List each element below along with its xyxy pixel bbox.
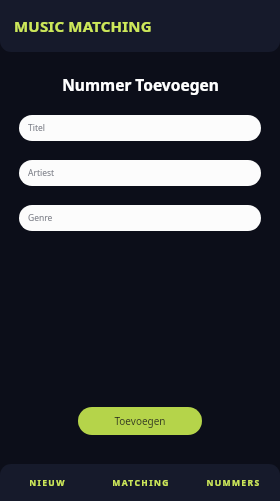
button[interactable]: NIEUW [0, 464, 94, 501]
button[interactable]: NUMMERS [187, 464, 280, 501]
button[interactable]: Artiest [19, 160, 261, 186]
staticText: Nummer Toevoegen [62, 74, 219, 95]
button[interactable]: MUSIC MATCHING [14, 16, 152, 36]
staticText: Toevoegen [114, 414, 166, 428]
button[interactable]: MATCHING [94, 464, 187, 501]
staticText: NIEUW [29, 477, 66, 489]
button[interactable]: Toevoegen [78, 407, 202, 435]
button[interactable]: Titel [19, 115, 261, 141]
staticText: NUMMERS [206, 477, 261, 489]
staticText: Titel [28, 122, 45, 134]
staticText: Genre [28, 212, 53, 224]
staticText: MUSIC MATCHING [14, 16, 152, 36]
button[interactable]: Genre [19, 205, 261, 231]
staticText: MATCHING [112, 477, 170, 489]
staticText: Artiest [28, 167, 55, 179]
